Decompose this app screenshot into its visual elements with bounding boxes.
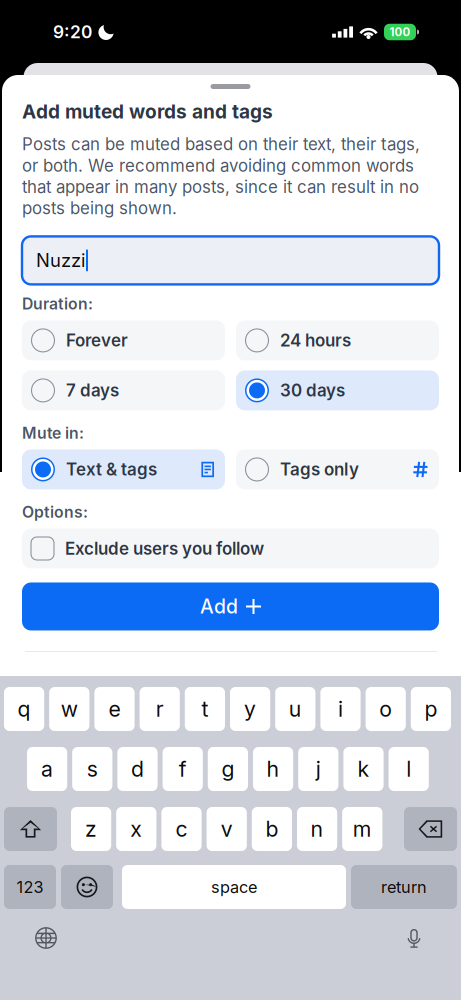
button[interactable]: 7 days [22, 370, 225, 410]
staticText: e [108, 696, 120, 722]
staticText: a [41, 756, 53, 782]
button[interactable]: e [94, 687, 135, 731]
staticText: h [267, 756, 280, 782]
staticText: 24 hours [280, 330, 351, 351]
button[interactable]: m [342, 807, 382, 851]
button[interactable]: return [351, 865, 457, 909]
staticText: g [221, 756, 234, 782]
staticText: i [338, 696, 343, 722]
button[interactable]: 123 [4, 865, 56, 909]
staticText: 123 [16, 877, 43, 897]
staticText: Forever [66, 330, 128, 351]
button[interactable]: l [389, 747, 429, 791]
button[interactable]: h [253, 747, 293, 791]
staticText: j [316, 756, 321, 782]
staticText: Text & tags [66, 459, 157, 480]
button[interactable]: i [320, 687, 361, 731]
staticText: Exclude users you follow [65, 538, 264, 559]
staticText: 7 days [66, 380, 119, 401]
button[interactable]: c [161, 807, 202, 851]
staticText: f [179, 756, 187, 782]
button[interactable]: y [230, 687, 270, 731]
button[interactable]: d [117, 747, 158, 791]
button[interactable]: z [71, 807, 111, 851]
button[interactable]: Exclude users you follow [22, 528, 439, 568]
button[interactable]: r [140, 687, 180, 731]
staticText: Posts can be muted based on their text, … [22, 134, 420, 154]
button[interactable]: Text & tags [22, 449, 225, 489]
button[interactable]: k [343, 747, 384, 791]
button[interactable]: Dictation [391, 917, 437, 959]
button[interactable]: f [163, 747, 203, 791]
button[interactable]: b [252, 807, 292, 851]
staticText: u [289, 696, 302, 722]
staticText: k [357, 756, 369, 782]
button[interactable]: Forever [22, 320, 225, 360]
staticText: m [353, 816, 372, 842]
staticText: 30 days [280, 380, 345, 401]
button[interactable]: q [4, 687, 44, 731]
button[interactable]: j [298, 747, 338, 791]
staticText: or both. We recommend avoiding common wo… [22, 155, 414, 176]
button[interactable]: Tags only [236, 449, 439, 489]
staticText: Options: [22, 502, 88, 521]
button[interactable]: u [275, 687, 315, 731]
button[interactable]: x [116, 807, 156, 851]
staticText: Duration: [22, 294, 93, 313]
staticText: b [265, 816, 278, 842]
staticText: Nuzzi [36, 249, 85, 271]
button[interactable]: Delete [404, 807, 457, 851]
button[interactable]: Add [22, 582, 439, 630]
button[interactable]: o [366, 687, 406, 731]
button[interactable]: t [185, 687, 225, 731]
staticText: y [244, 696, 256, 722]
button[interactable]: s [72, 747, 112, 791]
staticText: d [131, 756, 144, 782]
staticText: q [18, 696, 31, 722]
staticText: Tags only [280, 459, 359, 480]
button[interactable]: Shift [4, 807, 57, 851]
button[interactable]: 30 days [236, 370, 439, 410]
button[interactable]: Emoji [61, 865, 113, 909]
button[interactable]: space [122, 865, 346, 909]
staticText: Add muted words and tags [22, 100, 273, 123]
staticText: 9:20 [53, 21, 92, 42]
button[interactable]: g [208, 747, 248, 791]
staticText: that appear in many posts, since it can … [22, 177, 419, 197]
button[interactable]: 24 hours [236, 320, 439, 360]
staticText: return [381, 877, 427, 897]
staticText: l [406, 756, 411, 782]
staticText: c [175, 816, 187, 842]
staticText: space [211, 877, 257, 897]
staticText: w [61, 696, 78, 722]
staticText: Add [200, 595, 238, 618]
staticText: t [201, 696, 208, 722]
button[interactable]: p [411, 687, 451, 731]
staticText: 100 [389, 25, 410, 39]
staticText: n [311, 816, 324, 842]
staticText: x [130, 816, 142, 842]
button[interactable]: w [49, 687, 89, 731]
staticText: p [424, 696, 437, 722]
staticText: s [87, 756, 98, 782]
staticText: v [221, 816, 233, 842]
staticText: posts being shown. [22, 198, 177, 218]
button[interactable]: a [27, 747, 67, 791]
staticText: z [85, 816, 97, 842]
button[interactable]: Switch keyboard [23, 917, 69, 959]
staticText: Mute in: [22, 423, 84, 442]
button[interactable]: v [207, 807, 247, 851]
staticText: o [379, 696, 392, 722]
staticText: r [156, 696, 164, 722]
button[interactable]: n [297, 807, 337, 851]
